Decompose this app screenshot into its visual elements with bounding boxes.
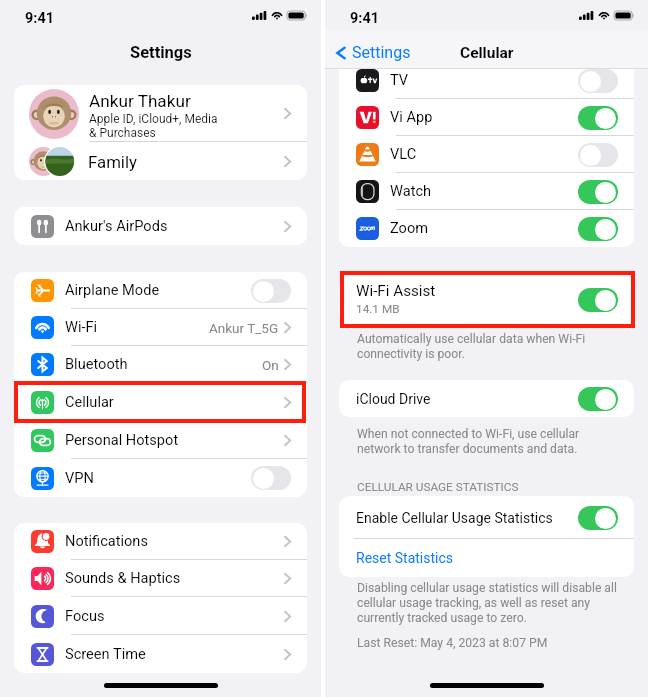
button[interactable]: Wi-Fi Assist (339, 275, 634, 325)
staticText: Enable Cellular Usage Statistics (356, 510, 578, 526)
staticText: TV (390, 71, 578, 88)
button[interactable]: TV (339, 69, 634, 99)
staticText: Ankur's AirPods (65, 217, 284, 234)
button[interactable]: Personal Hotspot (14, 421, 307, 459)
staticText: Notifications (65, 532, 284, 549)
button[interactable]: Enable Cellular Usage Statistics (339, 496, 634, 539)
staticText: 9:41 (25, 10, 55, 27)
staticText: iCloud Drive (356, 391, 578, 407)
button[interactable]: Wi-Fi (14, 309, 307, 346)
staticText: Family (88, 152, 284, 172)
staticText: Apple ID, iCloud+, Media & Purchases (89, 112, 218, 140)
staticText: Ankur T_5G (209, 320, 279, 336)
staticText: Sounds & Haptics (65, 569, 284, 586)
button[interactable]: Vi App (339, 99, 634, 136)
button[interactable]: Sounds & Haptics (14, 560, 307, 597)
staticText: Ankur Thakur (89, 91, 191, 111)
staticText: VLC (390, 145, 578, 162)
button[interactable]: Family (14, 142, 307, 180)
button[interactable]: Ankur Thakur (14, 85, 307, 142)
button[interactable]: Toggle on (578, 180, 618, 204)
button[interactable]: Watch (339, 173, 634, 210)
staticText: Settings (352, 43, 411, 62)
button[interactable]: Toggle off (578, 143, 618, 167)
button[interactable]: Zoom (339, 210, 634, 247)
button[interactable]: Airplane Mode (14, 272, 307, 309)
button[interactable]: Cellular (14, 383, 307, 421)
button[interactable]: Screen Time (14, 635, 307, 673)
button[interactable]: Toggle off (251, 466, 291, 490)
staticText: Focus (65, 607, 284, 624)
staticText: Reset Statistics (356, 550, 454, 566)
button[interactable]: Toggle on (578, 387, 618, 411)
button[interactable]: VPN (14, 459, 307, 497)
button[interactable]: Reset Statistics (339, 539, 634, 577)
staticText: Personal Hotspot (65, 431, 284, 448)
button[interactable]: Toggle on (578, 288, 618, 312)
staticText: Cellular (460, 44, 514, 62)
staticText: Automatically use cellular data when Wi-… (357, 332, 586, 361)
staticText: On (262, 357, 279, 373)
staticText: Airplane Mode (65, 281, 251, 298)
button[interactable]: Ankur's AirPods (14, 207, 307, 245)
staticText: Watch (390, 182, 578, 199)
button[interactable]: Focus (14, 597, 307, 635)
staticText: When not connected to Wi-Fi, use cellula… (357, 427, 580, 456)
button[interactable]: Toggle on (578, 506, 618, 530)
staticText: Last Reset: May 4, 2023 at 8:07 PM (357, 636, 548, 650)
staticText: Settings (130, 43, 192, 62)
button[interactable]: Toggle off (578, 69, 618, 93)
button[interactable]: Toggle on (578, 106, 618, 130)
button[interactable]: Settings (325, 39, 419, 66)
staticText: Screen Time (65, 645, 284, 662)
button[interactable]: iCloud Drive (339, 380, 634, 417)
button[interactable]: Notifications (14, 523, 307, 560)
button[interactable]: Bluetooth (14, 346, 307, 383)
staticText: Wi-Fi Assist (356, 282, 436, 300)
staticText: Bluetooth (65, 355, 262, 372)
staticText: Cellular (65, 393, 284, 410)
staticText: CELLULAR USAGE STATISTICS (357, 480, 519, 494)
staticText: VPN (65, 469, 251, 486)
button[interactable]: VLC (339, 136, 634, 173)
staticText: Disabling cellular usage statistics will… (357, 581, 617, 625)
button[interactable]: Toggle off (251, 279, 291, 303)
staticText: 14.1 MB (356, 302, 400, 316)
button[interactable]: Toggle on (578, 217, 618, 241)
staticText: 9:41 (350, 10, 380, 27)
staticText: Wi-Fi (65, 318, 209, 335)
staticText: Vi App (390, 108, 578, 125)
staticText: Zoom (390, 219, 578, 236)
